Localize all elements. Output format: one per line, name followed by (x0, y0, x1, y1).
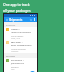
staticText: Shipments (9, 18, 23, 22)
button[interactable]: More options (33, 18, 36, 21)
button[interactable]: FedEx • 7712 3456 7890 (4, 71, 37, 72)
staticText: Today, 10:24 (11, 37, 21, 39)
button[interactable]: Open navigation menu (5, 18, 8, 21)
staticText: Amazon • 1Z999AA10123456784 (11, 28, 35, 34)
staticText: One app to track (3, 2, 30, 7)
staticText: Arriving tomorrow (11, 48, 26, 50)
button[interactable]: Add shipment (30, 71, 35, 72)
staticText: all your packages (3, 8, 31, 13)
button[interactable]: DHL Express • JD0140000123 (4, 58, 37, 71)
staticText: Delivered (11, 66, 19, 68)
staticText: IN TRANSIT (6, 24, 16, 26)
button[interactable]: eBay order • 9400110200881234567 (4, 40, 37, 53)
staticText: eBay order • 9400110200881234567 (11, 41, 35, 47)
staticText: Yesterday (11, 50, 19, 52)
staticText: Out for delivery (11, 35, 24, 37)
button[interactable]: Search (29, 18, 32, 21)
staticText: Mon (11, 68, 15, 70)
button[interactable]: Amazon • 1Z999AA10123456784 (4, 27, 37, 40)
staticText: DELIVERED (6, 55, 15, 57)
staticText: DHL Express • JD0140000123 (11, 59, 35, 65)
